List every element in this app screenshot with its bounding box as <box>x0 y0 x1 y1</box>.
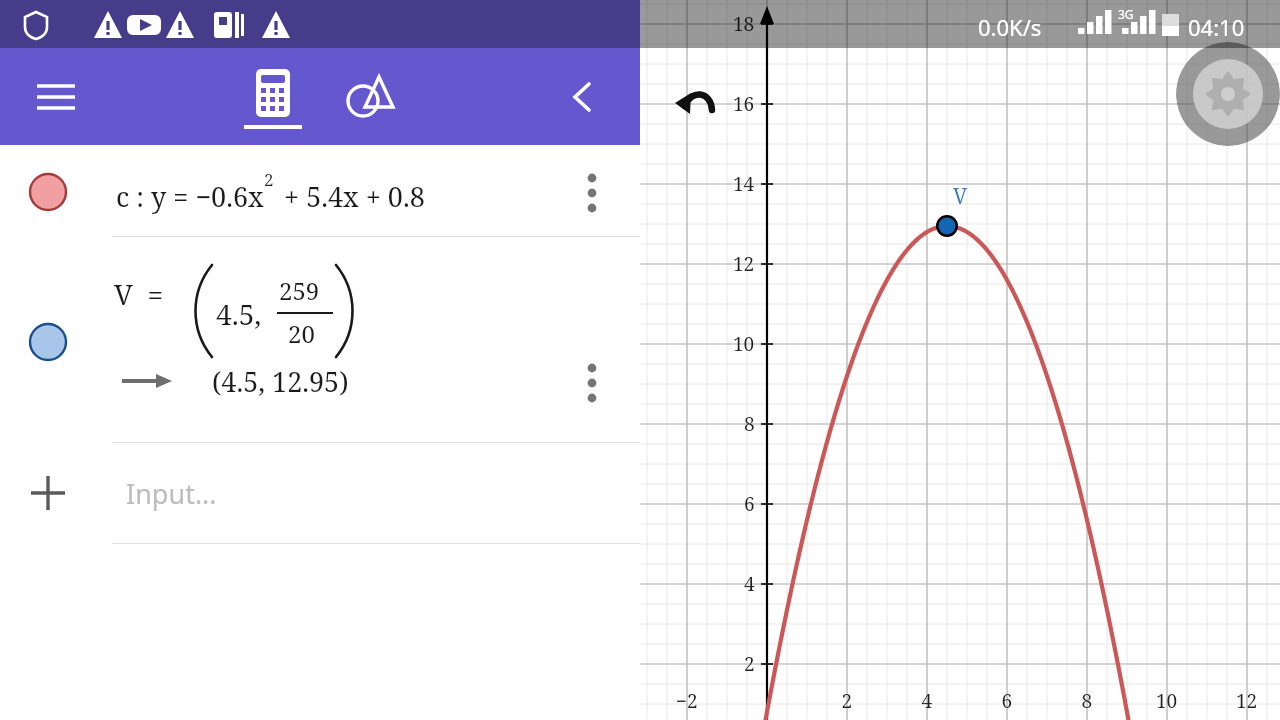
button[interactable]: Undo <box>670 78 724 132</box>
button[interactable]: Calculator <box>243 57 303 137</box>
button[interactable]: Geometry <box>339 67 399 127</box>
button[interactable] <box>0 237 640 443</box>
button[interactable]: Back <box>556 71 608 123</box>
button[interactable] <box>0 145 640 237</box>
button[interactable]: Settings <box>1176 42 1280 146</box>
button[interactable] <box>0 443 640 544</box>
button[interactable]: Menu <box>28 69 84 125</box>
